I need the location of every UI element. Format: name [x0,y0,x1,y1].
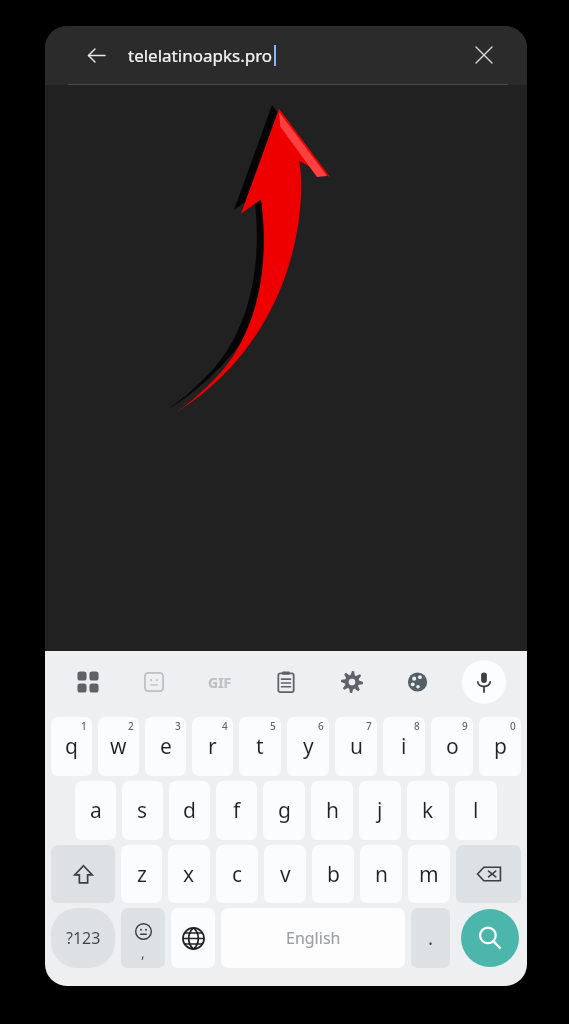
staticText: , [141,943,145,962]
staticText: 5 [270,719,276,733]
staticText: 1 [81,719,87,733]
staticText: 7 [366,719,372,733]
staticText: f [233,796,241,825]
button[interactable]: ?123 [51,908,115,968]
staticText: e [160,732,172,761]
staticText: h [326,796,339,825]
staticText: y [303,732,314,761]
staticText: 8 [414,719,420,733]
button[interactable]: Clear [467,38,501,72]
button[interactable]: Backspace [456,845,521,903]
staticText: ?123 [66,927,101,949]
staticText: English [286,927,341,949]
button[interactable]: k [407,781,449,840]
button[interactable]: n [360,845,402,903]
button[interactable]: x [168,845,210,903]
button[interactable]: mic [451,651,517,713]
button[interactable]: i [383,717,425,776]
button[interactable]: t [239,717,281,776]
button[interactable]: clipboard [253,651,319,713]
button[interactable]: c [216,845,258,903]
button[interactable]: Search [461,909,519,967]
staticText: a [90,796,102,825]
button[interactable]: f [216,781,257,840]
button[interactable]: Emoji [121,908,165,968]
button[interactable]: j [359,781,401,840]
button[interactable]: gif [187,651,253,713]
button[interactable]: h [311,781,353,840]
staticText: w [110,732,127,761]
button[interactable]: r [192,717,233,776]
button[interactable]: Back [79,38,113,72]
staticText: v [280,860,291,889]
button[interactable]: sticker [121,651,187,713]
button[interactable]: b [312,845,354,903]
staticText: GIF [208,673,232,692]
staticText: z [137,860,147,889]
staticText: p [494,732,507,761]
staticText: 3 [175,719,181,733]
button[interactable]: e [145,717,186,776]
staticText: telelatinoapks.pro [128,44,273,67]
button[interactable]: palette [385,651,451,713]
button[interactable]: Space [221,908,405,968]
button[interactable]: o [431,717,473,776]
staticText: 4 [222,719,228,733]
staticText: j [377,796,383,825]
staticText: 0 [510,719,516,733]
staticText: d [183,796,196,825]
staticText: u [350,732,363,761]
button[interactable]: s [122,781,163,840]
staticText: s [137,796,148,825]
button[interactable]: l [455,781,497,840]
button[interactable]: v [264,845,306,903]
button[interactable]: a [75,781,116,840]
button[interactable]: Change language [171,908,215,968]
button[interactable]: m [408,845,450,903]
staticText: c [232,860,243,889]
staticText: b [327,860,340,889]
button[interactable]: g [263,781,305,840]
staticText: m [419,860,439,889]
staticText: 6 [318,719,324,733]
button[interactable]: q [51,717,92,776]
staticText: l [473,796,479,825]
staticText: o [446,732,459,761]
staticText: 2 [128,719,134,733]
staticText: q [65,732,78,761]
staticText: t [256,732,264,761]
button[interactable]: d [169,781,210,840]
button[interactable]: w [98,717,139,776]
button[interactable]: grid [55,651,121,713]
staticText: n [375,860,388,889]
button[interactable]: p [479,717,521,776]
staticText: x [183,860,195,889]
staticText: . [428,925,434,951]
staticText: i [401,732,407,761]
button[interactable]: settings [319,651,385,713]
button[interactable]: Shift [51,845,115,903]
staticText: r [208,732,217,761]
button[interactable]: u [335,717,377,776]
button[interactable]: . [411,908,450,968]
staticText: k [422,796,434,825]
button[interactable]: z [121,845,162,903]
staticText: 9 [462,719,468,733]
staticText: g [278,796,291,825]
button[interactable]: y [287,717,329,776]
